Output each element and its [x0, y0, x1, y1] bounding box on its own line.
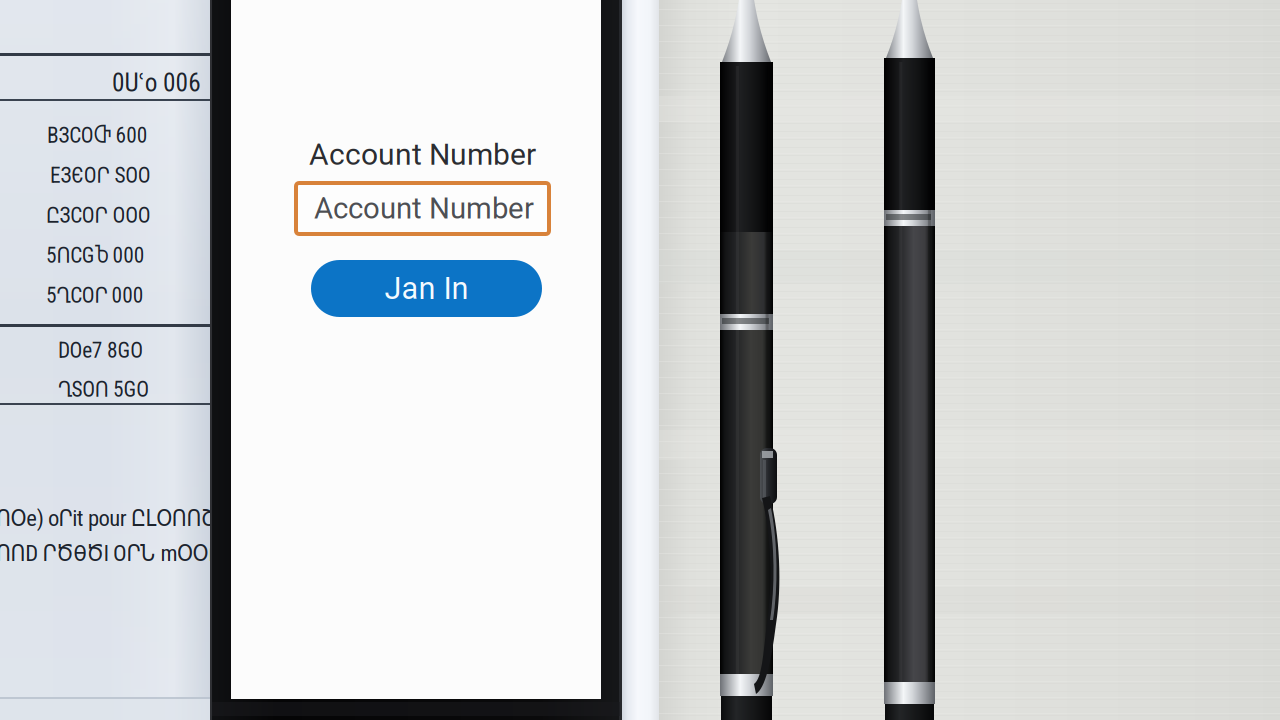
- staticText: Account Number: [314, 191, 534, 226]
- button[interactable]: Account Number field: [296, 183, 549, 234]
- staticText: ЕЗЄОՐ ЅОО: [50, 163, 151, 188]
- staticText: Account Number: [309, 137, 536, 172]
- staticText: ԸЗСОՐ ООО: [46, 203, 151, 228]
- staticText: 5ՂСОՐ 000: [46, 283, 144, 308]
- staticText: 0Uՙo 006: [112, 68, 201, 98]
- staticText: DOe7 8GO: [58, 338, 143, 363]
- button[interactable]: Jan In: [311, 260, 542, 317]
- staticText: Jan In: [384, 270, 468, 306]
- staticText: ՈՕe) oՐit pour ԸԼՕՈՈՇԼ ԳԻ: [0, 505, 260, 532]
- staticText: ВЗСОႧ 600: [47, 123, 148, 148]
- staticText: ՈՈD ՐԾӨԾl OՐՆ mՕՕՐԾ ԾՌԾԾ: [0, 540, 314, 567]
- staticText: 5ՈСGႦ 000: [46, 243, 145, 268]
- staticText: ՂЅОՈ 5GO: [58, 377, 149, 402]
